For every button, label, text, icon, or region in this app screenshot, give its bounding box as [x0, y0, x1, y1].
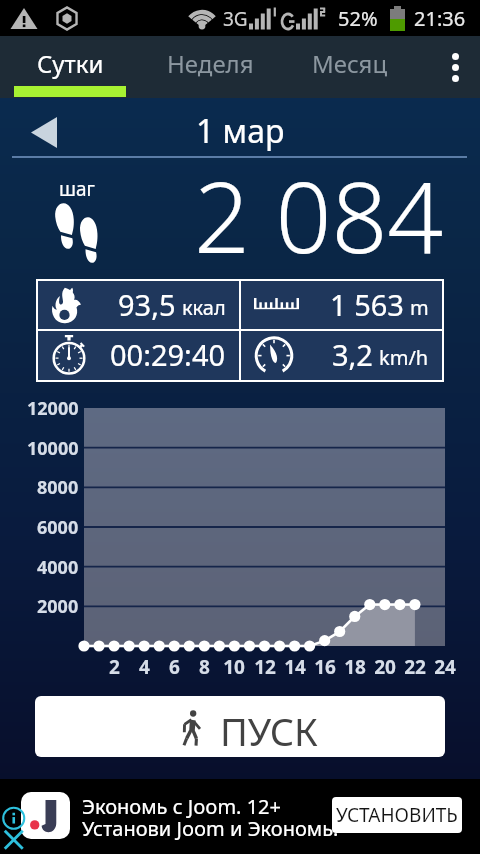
- button[interactable]: Previous day: [16, 104, 72, 160]
- button[interactable]: Неделя: [140, 36, 280, 98]
- staticText: 14: [284, 654, 306, 680]
- staticText: 3G: [223, 6, 248, 32]
- button[interactable]: 1 563: [241, 281, 442, 329]
- staticText: 22: [404, 654, 426, 680]
- staticText: ПУСК: [220, 705, 318, 757]
- button[interactable]: 00:29:40: [38, 331, 239, 380]
- staticText: 8: [199, 654, 210, 680]
- button[interactable]: More options: [430, 36, 480, 98]
- button[interactable]: Сутки: [0, 36, 140, 98]
- staticText: ккал: [182, 294, 226, 321]
- staticText: 2 084: [194, 148, 444, 258]
- staticText: 6000: [37, 515, 79, 540]
- staticText: Сутки: [37, 47, 104, 80]
- staticText: Установи Joom и Экономь.: [82, 815, 339, 842]
- staticText: 10000: [27, 436, 79, 461]
- staticText: 93,5: [118, 285, 176, 324]
- staticText: 18: [344, 654, 366, 680]
- staticText: 16: [314, 654, 336, 680]
- staticText: 12: [254, 654, 276, 680]
- staticText: 00:29:40: [110, 335, 226, 374]
- staticText: 2: [109, 654, 120, 680]
- staticText: Экономь с Joom. 12+: [82, 793, 281, 820]
- staticText: 3,2: [332, 335, 373, 374]
- staticText: 20: [374, 654, 396, 680]
- staticText: 52%: [338, 5, 378, 32]
- staticText: 24: [434, 654, 456, 680]
- button[interactable]: 93,5: [38, 281, 239, 329]
- staticText: шаг: [59, 176, 95, 202]
- staticText: 4000: [37, 555, 79, 580]
- staticText: 1 563: [330, 285, 404, 324]
- button[interactable]: Месяц: [280, 36, 420, 98]
- staticText: m: [410, 294, 429, 321]
- staticText: 4: [139, 654, 150, 680]
- staticText: 6: [169, 654, 180, 680]
- staticText: УСТАНОВИТЬ: [336, 802, 458, 828]
- staticText: 10: [223, 654, 245, 680]
- staticText: 21:36: [414, 5, 466, 32]
- button[interactable]: 3,2: [241, 331, 442, 380]
- staticText: Месяц: [312, 47, 388, 80]
- staticText: 1 мар: [196, 109, 285, 153]
- button[interactable]: УСТАНОВИТЬ: [332, 797, 462, 833]
- staticText: 2000: [37, 594, 79, 619]
- button[interactable]: ПУСК: [35, 696, 445, 757]
- staticText: 8000: [37, 475, 79, 500]
- staticText: km/h: [379, 344, 429, 371]
- staticText: Неделя: [167, 47, 254, 80]
- staticText: 12000: [27, 396, 79, 421]
